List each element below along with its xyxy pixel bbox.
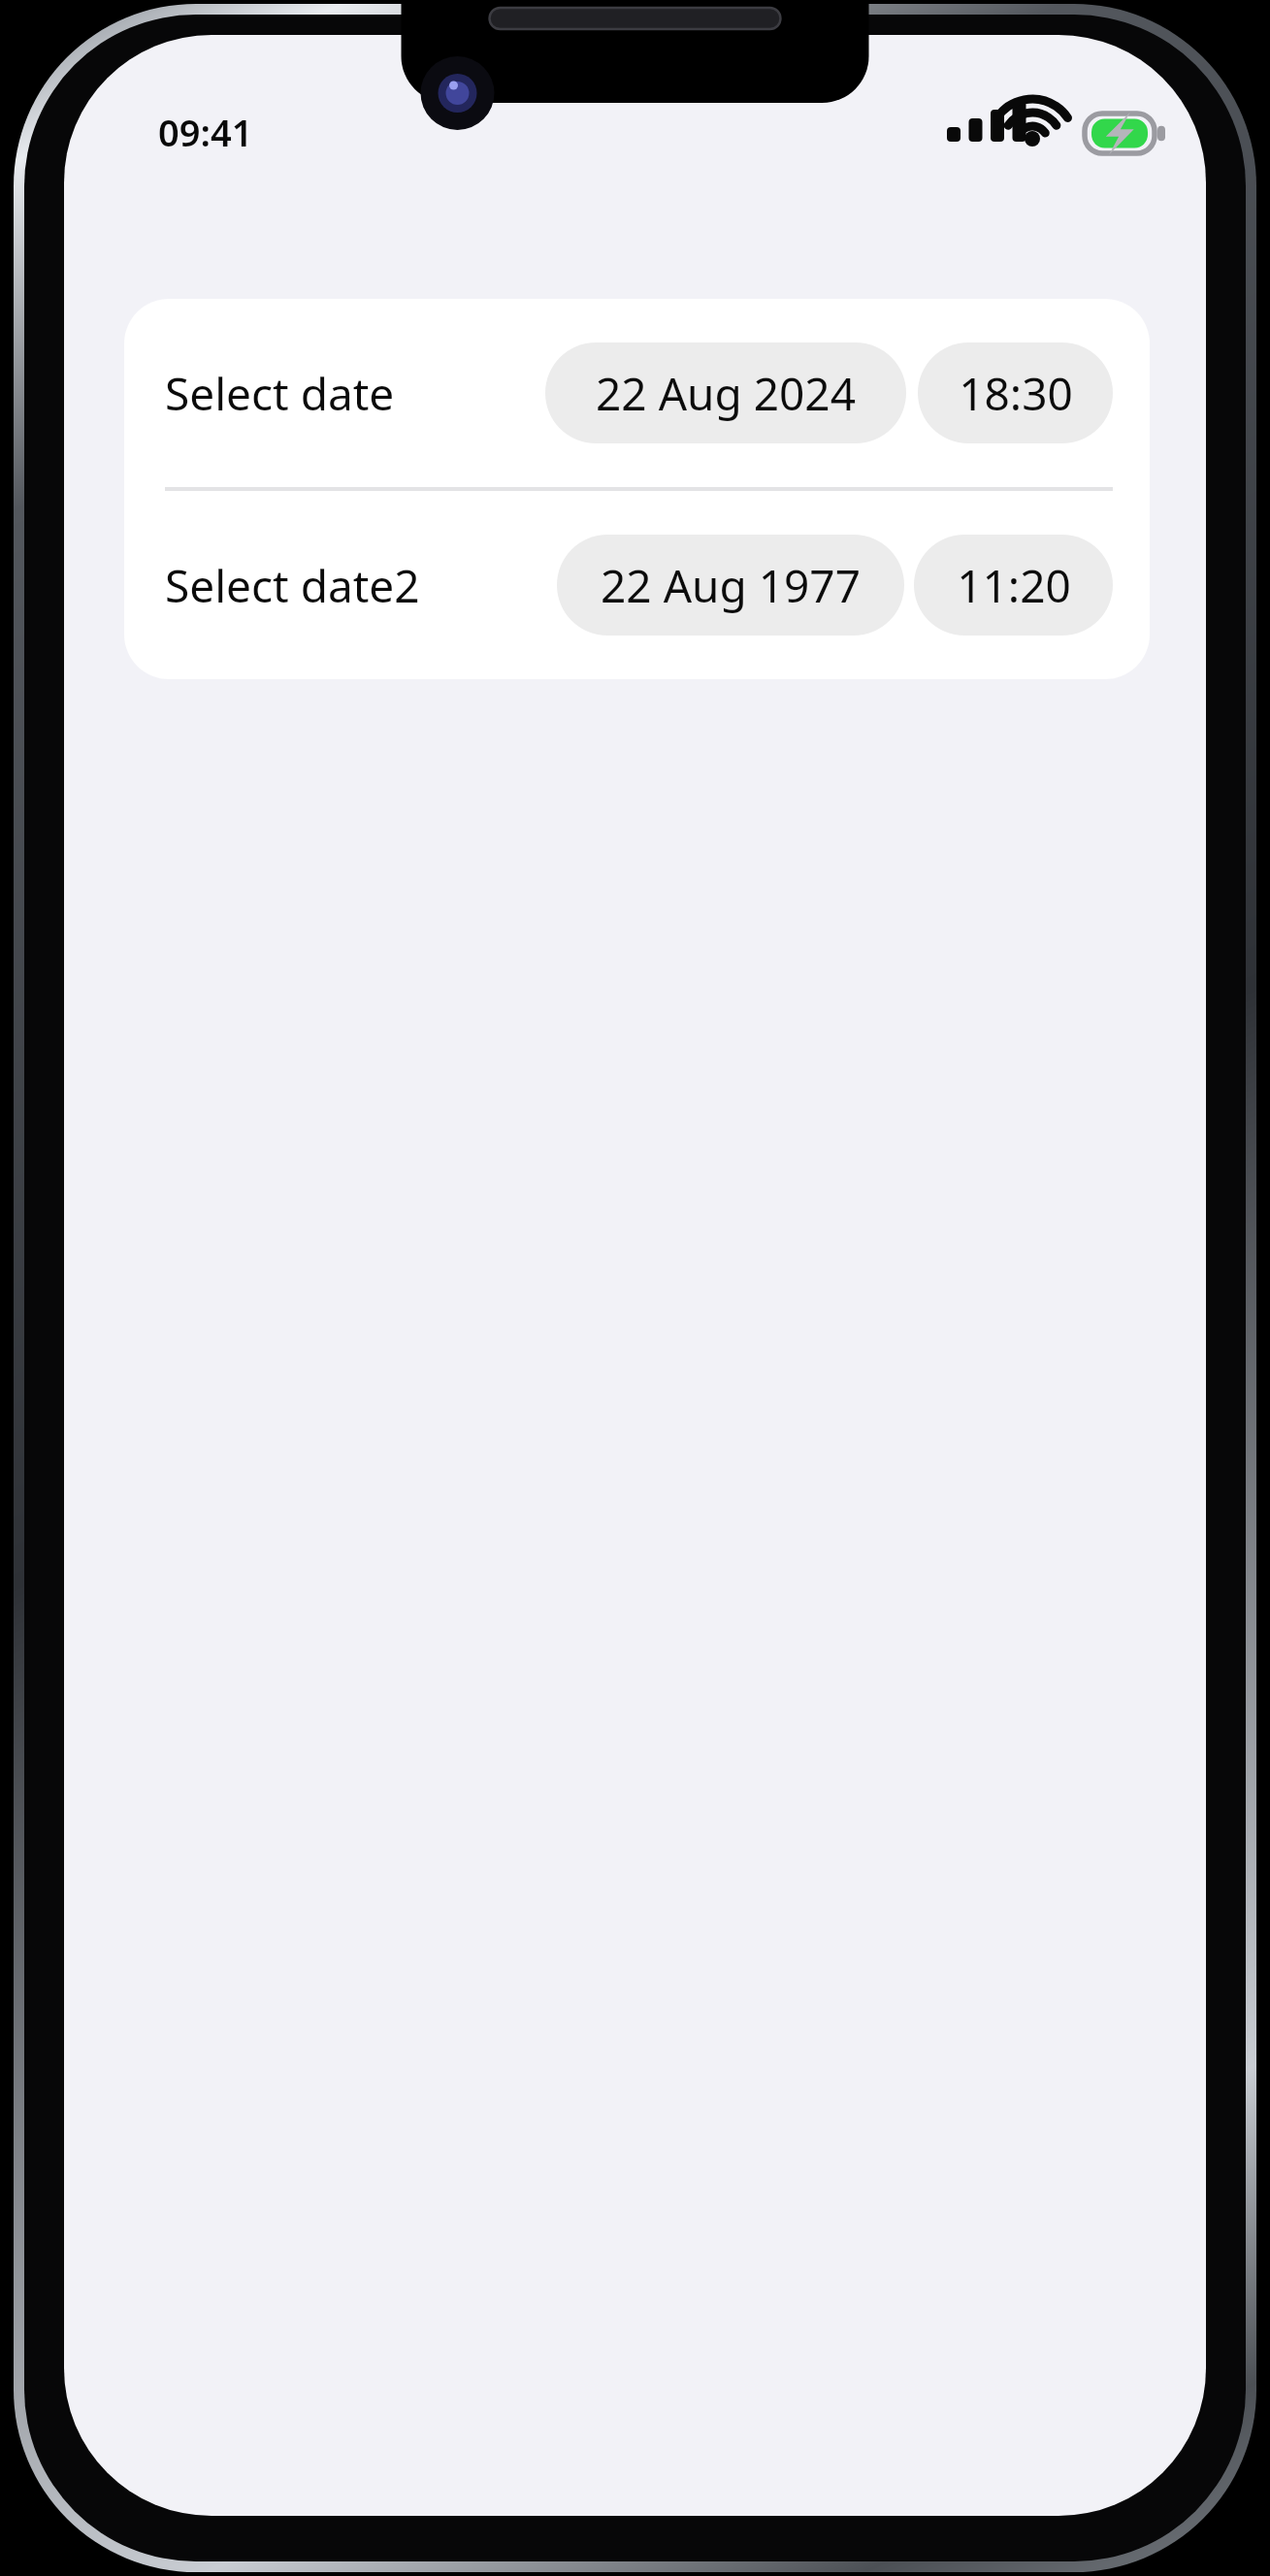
- staticText: Select date: [165, 363, 395, 424]
- button[interactable]: Pick time for Select date: [918, 342, 1113, 443]
- button[interactable]: Pick time for Select date2: [914, 535, 1113, 636]
- button[interactable]: Select date2: [124, 491, 1150, 679]
- staticText: 18:30: [959, 363, 1073, 424]
- button[interactable]: Pick date for Select date: [545, 342, 906, 443]
- staticText: 22 Aug 1977: [601, 555, 861, 616]
- button[interactable]: Select date: [124, 299, 1150, 487]
- staticText: 22 Aug 2024: [596, 363, 856, 424]
- staticText: Select date2: [165, 555, 420, 616]
- staticText: 11:20: [957, 555, 1071, 616]
- staticText: 09:41: [158, 107, 253, 157]
- button[interactable]: Pick date for Select date2: [557, 535, 904, 636]
